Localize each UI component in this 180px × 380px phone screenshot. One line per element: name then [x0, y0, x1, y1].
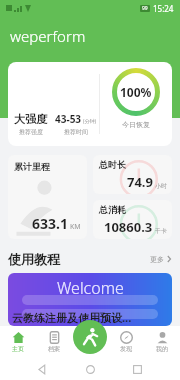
other: Home — [86, 365, 95, 374]
other: Recents — [133, 365, 142, 374]
staticText: 累计里程 — [14, 161, 50, 172]
staticText: 发现 — [120, 345, 132, 353]
staticText: 100% — [120, 84, 152, 100]
staticText: 更多 — [150, 255, 164, 264]
button[interactable]: 总消耗 — [93, 200, 172, 239]
button[interactable]: 档案 — [36, 326, 72, 358]
staticText: 99 — [142, 5, 148, 12]
button[interactable]: 我的 — [144, 326, 180, 358]
staticText: (分钟) — [83, 118, 97, 125]
other: Back — [38, 365, 47, 374]
staticText: 云教练注册及使用预设... — [12, 310, 132, 325]
staticText: 大强度 — [14, 112, 47, 126]
button[interactable]: 累计里程 — [8, 155, 87, 239]
staticText: 43-53 — [55, 112, 82, 126]
staticText: 推荐时间 — [64, 128, 88, 136]
staticText: 主页 — [12, 345, 24, 353]
staticText: 千卡 — [155, 227, 167, 235]
staticText: KM — [70, 222, 81, 232]
staticText: 我的 — [156, 345, 168, 353]
staticText: 633.1 — [32, 214, 68, 233]
staticText: 小时 — [155, 182, 167, 190]
staticText: weperform — [10, 26, 86, 46]
button[interactable]: 开始运动 — [73, 320, 107, 354]
staticText: 档案 — [48, 345, 60, 353]
button[interactable]: Welcome — [8, 273, 172, 326]
staticText: 推荐强度 — [19, 128, 43, 136]
staticText: 总消耗 — [99, 204, 126, 215]
button[interactable]: 总时长 — [93, 155, 172, 194]
staticText: 10860.3 — [104, 218, 153, 236]
button[interactable]: 使用教程 — [8, 251, 172, 267]
staticText: 使用教程 — [8, 251, 60, 267]
button[interactable]: 大强度 — [8, 62, 172, 146]
staticText: 今日恢复 — [122, 120, 150, 129]
button[interactable]: 发现 — [108, 326, 144, 358]
staticText: 总时长 — [99, 159, 126, 170]
button[interactable]: 主页 — [0, 326, 36, 358]
staticText: Welcome — [57, 277, 124, 299]
staticText: 74.9 — [127, 173, 153, 191]
staticText: 15:24 — [153, 3, 174, 14]
